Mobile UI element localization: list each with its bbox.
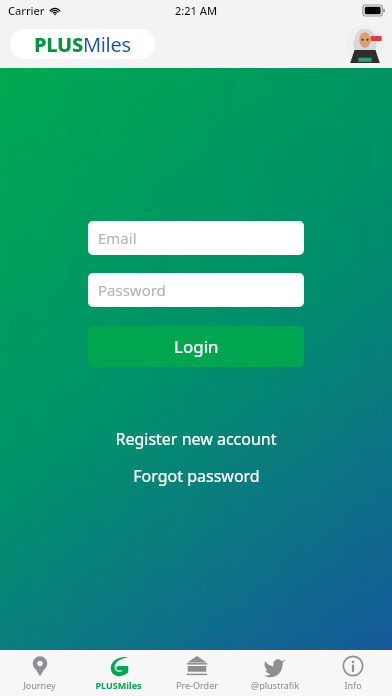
button[interactable]: Email (88, 221, 304, 255)
staticText: Info (344, 679, 362, 691)
button[interactable]: Password (88, 273, 304, 307)
staticText: Forgot password (133, 465, 260, 487)
staticText: Journey (23, 679, 56, 691)
staticText: 2:21 AM (175, 3, 218, 18)
staticText: @plustrafik (251, 679, 299, 691)
button[interactable]: PLUSMiles (79, 650, 158, 696)
staticText: PLUSMiles (95, 679, 142, 691)
staticText: Pre-Order (176, 679, 218, 691)
button[interactable]: Register new account (0, 424, 392, 454)
button[interactable]: Forgot password (0, 461, 392, 491)
button[interactable]: Pre-Order (158, 650, 236, 696)
button[interactable]: Login (88, 326, 304, 367)
button[interactable]: Info (314, 650, 392, 696)
staticText: Register new account (115, 428, 277, 450)
staticText: Email (98, 228, 137, 248)
button[interactable]: @plustrafik (236, 650, 314, 696)
staticText: Login (174, 335, 219, 358)
staticText: Password (98, 280, 166, 300)
button[interactable]: Journey (0, 650, 79, 696)
staticText: Carrier (8, 3, 45, 18)
button[interactable]: Profile (346, 25, 384, 63)
staticText: PLUSMiles (34, 31, 131, 58)
button[interactable]: PLUSMiles (10, 29, 155, 59)
